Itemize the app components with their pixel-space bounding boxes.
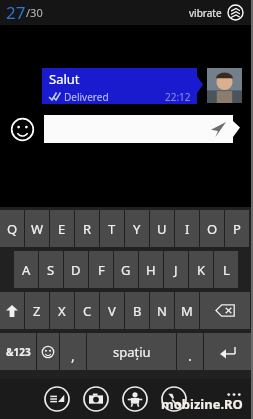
button[interactable]: R <box>75 210 99 247</box>
staticText: I <box>185 220 190 238</box>
staticText: 22:12 <box>165 90 191 102</box>
button[interactable]: Backspace <box>200 292 250 329</box>
button[interactable]: I <box>175 210 199 247</box>
button[interactable]: V <box>100 292 124 329</box>
staticText: T <box>108 220 116 238</box>
button[interactable]: D <box>64 251 88 288</box>
button[interactable]: B <box>125 292 149 329</box>
other: Vibrate mode <box>227 4 244 21</box>
staticText: N <box>157 302 167 320</box>
staticText: R <box>83 220 92 238</box>
staticText: B <box>133 302 142 320</box>
staticText: vibrate <box>189 6 222 20</box>
button[interactable]: M <box>175 292 199 329</box>
button[interactable]: N <box>150 292 174 329</box>
button[interactable]: W <box>25 210 49 247</box>
button[interactable]: S <box>39 251 63 288</box>
button[interactable]: Call <box>161 386 187 412</box>
button[interactable]: H <box>139 251 163 288</box>
staticText: , <box>71 346 75 365</box>
button[interactable]: A <box>14 251 38 288</box>
staticText: J <box>174 261 178 279</box>
staticText: W <box>31 220 44 238</box>
staticText: C <box>83 302 92 320</box>
staticText: 27 <box>6 1 26 24</box>
button[interactable]: L <box>214 251 238 288</box>
button[interactable]: C <box>75 292 99 329</box>
button[interactable]: , <box>60 333 86 370</box>
button[interactable]: Shift <box>0 292 24 329</box>
staticText: V <box>108 302 116 320</box>
button[interactable]: . <box>177 333 203 370</box>
staticText: spațiu <box>113 343 151 361</box>
button[interactable]: Attach file <box>122 386 148 412</box>
staticText: Z <box>33 302 41 320</box>
staticText: M <box>181 302 193 320</box>
staticText: U <box>157 220 167 238</box>
staticText: . <box>188 346 192 365</box>
button[interactable]: Q <box>0 210 24 247</box>
button[interactable]: Contact photo <box>207 68 242 103</box>
staticText: Q <box>7 220 18 238</box>
staticText: S <box>47 261 55 279</box>
button[interactable]: F <box>89 251 113 288</box>
button[interactable]: U <box>150 210 174 247</box>
button[interactable]: &123 <box>0 333 36 370</box>
button[interactable]: Enter <box>204 333 251 370</box>
staticText: Delivered <box>64 90 109 102</box>
button[interactable]: spațiu <box>87 333 176 370</box>
staticText: mobizine.RO <box>161 395 243 413</box>
button[interactable]: J <box>164 251 188 288</box>
staticText: D <box>71 261 81 279</box>
staticText: P <box>233 220 241 238</box>
button[interactable]: O <box>200 210 224 247</box>
button[interactable]: G <box>114 251 138 288</box>
button[interactable]: X <box>50 292 74 329</box>
button[interactable]: Attach photo <box>83 386 109 412</box>
button[interactable]: Emoji keyboard <box>37 333 59 370</box>
staticText: G <box>121 261 131 279</box>
staticText: H <box>146 261 156 279</box>
button[interactable]: E <box>50 210 74 247</box>
button[interactable]: New message <box>44 386 70 412</box>
button[interactable]: Message input <box>44 115 233 143</box>
staticText: O <box>207 220 218 238</box>
staticText: K <box>197 261 206 279</box>
button[interactable]: K <box>189 251 213 288</box>
button[interactable]: P <box>225 210 249 247</box>
staticText: F <box>98 261 105 279</box>
staticText: /30 <box>26 5 43 20</box>
button[interactable]: Z <box>25 292 49 329</box>
staticText: L <box>223 261 230 279</box>
button[interactable]: Salut <box>42 68 197 104</box>
button[interactable]: T <box>100 210 124 247</box>
staticText: E <box>58 220 66 238</box>
staticText: Y <box>133 220 141 238</box>
button[interactable]: Y <box>125 210 149 247</box>
button[interactable]: More options <box>223 388 245 410</box>
button[interactable]: Emoticons <box>10 117 35 142</box>
staticText: Salut <box>49 70 80 88</box>
staticText: &123 <box>6 345 31 359</box>
staticText: X <box>58 302 66 320</box>
staticText: A <box>22 261 31 279</box>
